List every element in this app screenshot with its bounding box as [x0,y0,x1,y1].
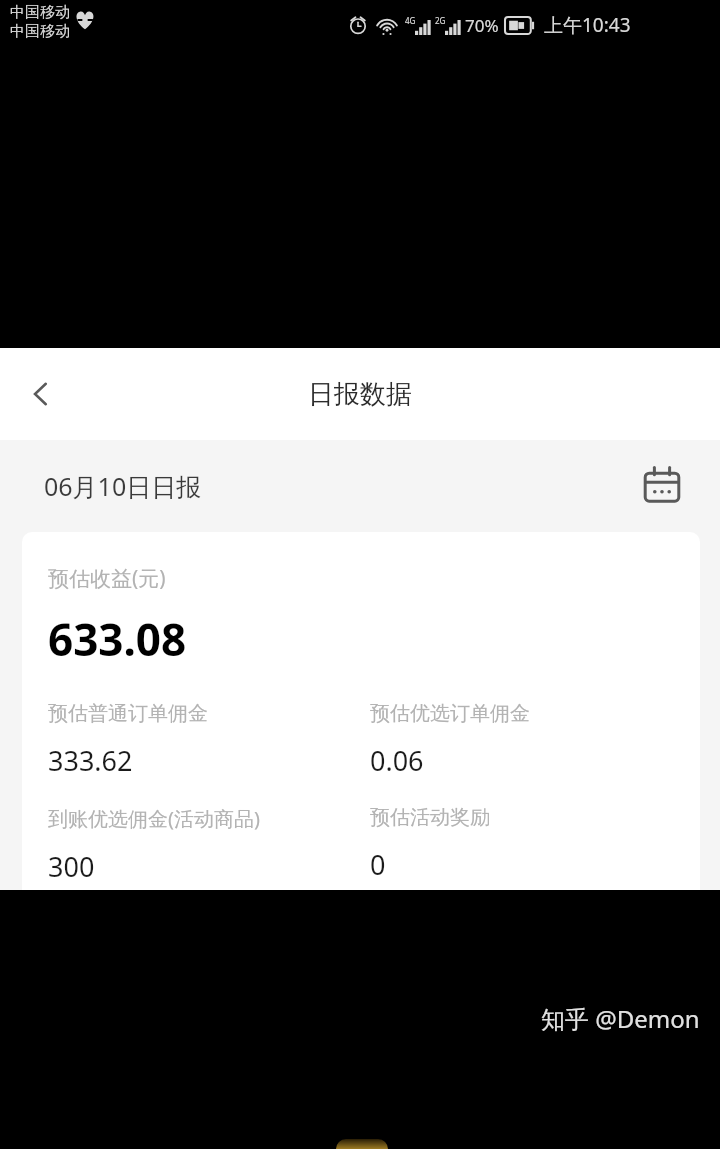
staticText: 06月10日日报 [44,469,202,503]
staticText: 0 [370,846,386,883]
staticText: 到账优选佣金(活动商品) [48,805,260,832]
staticText: 上午10:43 [544,12,631,38]
staticText: 4G [405,15,416,26]
staticText: 预估普通订单佣金 [48,701,208,726]
staticText: 中国移动 [10,22,70,41]
button[interactable]: Back [12,365,70,423]
staticText: 知乎 @Demon [541,1002,700,1035]
staticText: 日报数据 [308,378,412,411]
staticText: 70% [465,14,499,37]
button[interactable]: Select date [636,460,688,512]
staticText: 中国移动 [10,3,70,22]
staticText: 预估优选订单佣金 [370,701,530,726]
button[interactable]: 预估收益(元) [22,532,700,890]
staticText: 预估活动奖励 [370,805,490,830]
staticText: 0.06 [370,742,424,779]
staticText: 633.08 [48,609,187,669]
staticText: 300 [48,848,95,885]
staticText: 333.62 [48,742,133,779]
staticText: 2G [435,15,446,26]
staticText: 预估收益(元) [48,564,166,593]
